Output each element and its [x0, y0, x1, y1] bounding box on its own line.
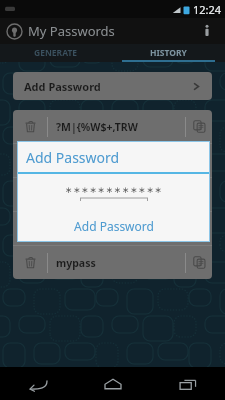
- button[interactable]: Back: [0, 367, 75, 400]
- staticText: ∗∗∗∗∗∗∗∗∗∗∗∗: [65, 185, 163, 195]
- staticText: 9220: [56, 222, 81, 236]
- button[interactable]: Add Password: [18, 211, 209, 241]
- staticText: •••••: [56, 154, 76, 168]
- button[interactable]: HISTORY: [112, 44, 225, 62]
- button[interactable]: Delete: [13, 144, 47, 177]
- staticText: 4731: [56, 188, 81, 202]
- staticText: mypass: [56, 256, 96, 270]
- button[interactable]: Add Password: [13, 72, 212, 100]
- button[interactable]: Home: [75, 367, 150, 400]
- button[interactable]: Copy: [186, 212, 212, 245]
- button[interactable]: Delete: [13, 178, 47, 211]
- button[interactable]: Delete: [13, 212, 212, 245]
- button[interactable]: Delete: [13, 178, 212, 211]
- staticText: GENERATE: [34, 47, 78, 59]
- staticText: Add Password: [24, 79, 101, 94]
- staticText: 12:24: [193, 2, 222, 17]
- button[interactable]: Delete: [13, 144, 212, 177]
- button[interactable]: Delete: [13, 212, 47, 245]
- button[interactable]: GENERATE: [0, 44, 112, 62]
- staticText: My Passwords: [28, 22, 115, 40]
- button[interactable]: Recents: [150, 367, 225, 400]
- button[interactable]: Delete: [13, 246, 212, 279]
- button[interactable]: Copy: [186, 178, 212, 211]
- button[interactable]: Copy: [186, 144, 212, 177]
- button[interactable]: Delete: [13, 110, 212, 143]
- staticText: HISTORY: [150, 47, 187, 59]
- button[interactable]: Copy: [186, 246, 212, 279]
- button[interactable]: Delete: [13, 246, 47, 279]
- button[interactable]: Copy: [186, 110, 212, 143]
- staticText: ?M|{%W$+,TRW: [56, 120, 138, 134]
- button[interactable]: Delete: [13, 110, 47, 143]
- staticText: Add Password: [26, 148, 120, 167]
- staticText: Add Password: [74, 218, 154, 234]
- button[interactable]: Info: [195, 19, 219, 43]
